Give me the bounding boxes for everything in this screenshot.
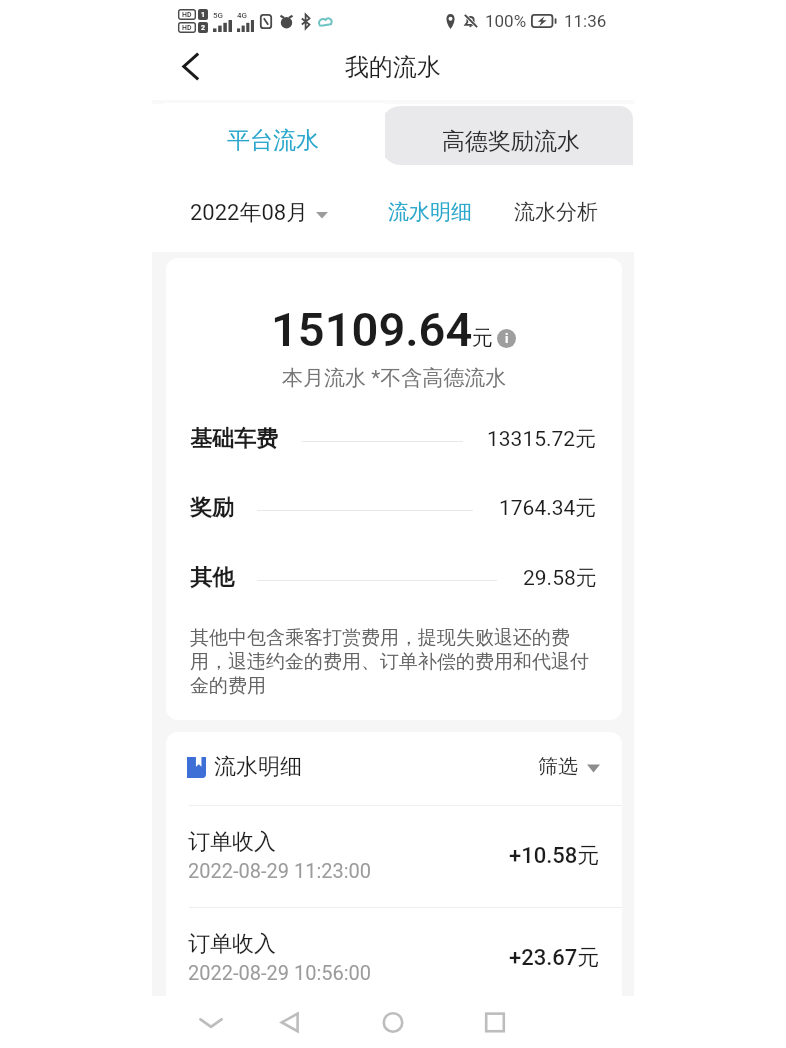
button[interactable]: 订单收入 — [166, 922, 622, 996]
staticText: 奖励 — [190, 494, 234, 522]
button[interactable]: 订单收入 — [166, 820, 622, 906]
button[interactable]: 流水分析 — [514, 199, 598, 225]
staticText: 2 — [201, 24, 206, 32]
staticText: 13315.72元 — [487, 426, 597, 452]
staticText: 本月流水 *不含高德流水 — [282, 365, 507, 391]
staticText: HD — [182, 11, 192, 19]
staticText: 1 — [201, 11, 206, 19]
staticText: +10.58元 — [509, 842, 600, 870]
staticText: 订单收入 — [188, 828, 276, 856]
staticText: 元 — [472, 325, 493, 351]
button[interactable]: 2022年08月 — [190, 199, 328, 227]
staticText: +23.67元 — [509, 944, 600, 972]
staticText: 订单收入 — [188, 930, 276, 958]
button[interactable]: Recents — [472, 996, 518, 1048]
staticText: 高德奖励流水 — [442, 127, 580, 156]
button[interactable]: 流水明细 — [187, 753, 302, 781]
staticText: 流水明细 — [388, 199, 472, 225]
staticText: 我的流水 — [345, 52, 441, 82]
staticText: 基础车费 — [190, 425, 278, 453]
button[interactable]: Hide keyboard — [188, 996, 234, 1048]
staticText: 11:36 — [564, 11, 607, 31]
button[interactable]: 流水明细 — [388, 199, 472, 225]
staticText: 29.58元 — [523, 565, 597, 591]
staticText: 100% — [485, 11, 527, 31]
staticText: 15109.64 — [271, 302, 473, 357]
staticText: 2022-08-29 10:56:00 — [188, 961, 372, 984]
staticText: 2022-08-29 11:23:00 — [188, 859, 372, 882]
staticText: 流水明细 — [214, 753, 302, 781]
button[interactable]: 筛选 — [538, 754, 600, 779]
button[interactable]: Back — [268, 996, 314, 1048]
button[interactable]: Back — [168, 43, 214, 89]
button[interactable]: Info — [497, 329, 516, 348]
button[interactable]: 高德奖励流水 — [380, 106, 633, 165]
staticText: 其他中包含乘客打赏费用，提现失败退还的费用，退违约金的费用、订单补偿的费用和代退… — [190, 626, 592, 698]
staticText: 其他 — [190, 564, 234, 592]
staticText: 1764.34元 — [499, 495, 597, 521]
staticText: 4G — [237, 11, 247, 20]
staticText: 流水分析 — [514, 199, 598, 225]
staticText: 2022年08月 — [190, 199, 309, 227]
staticText: i — [505, 331, 509, 346]
staticText: 5G — [213, 11, 223, 20]
button[interactable]: 平台流水 — [152, 103, 385, 166]
button[interactable]: Home — [370, 996, 416, 1048]
staticText: 筛选 — [538, 754, 578, 779]
staticText: 平台流水 — [227, 126, 319, 155]
staticText: HD — [182, 24, 192, 32]
